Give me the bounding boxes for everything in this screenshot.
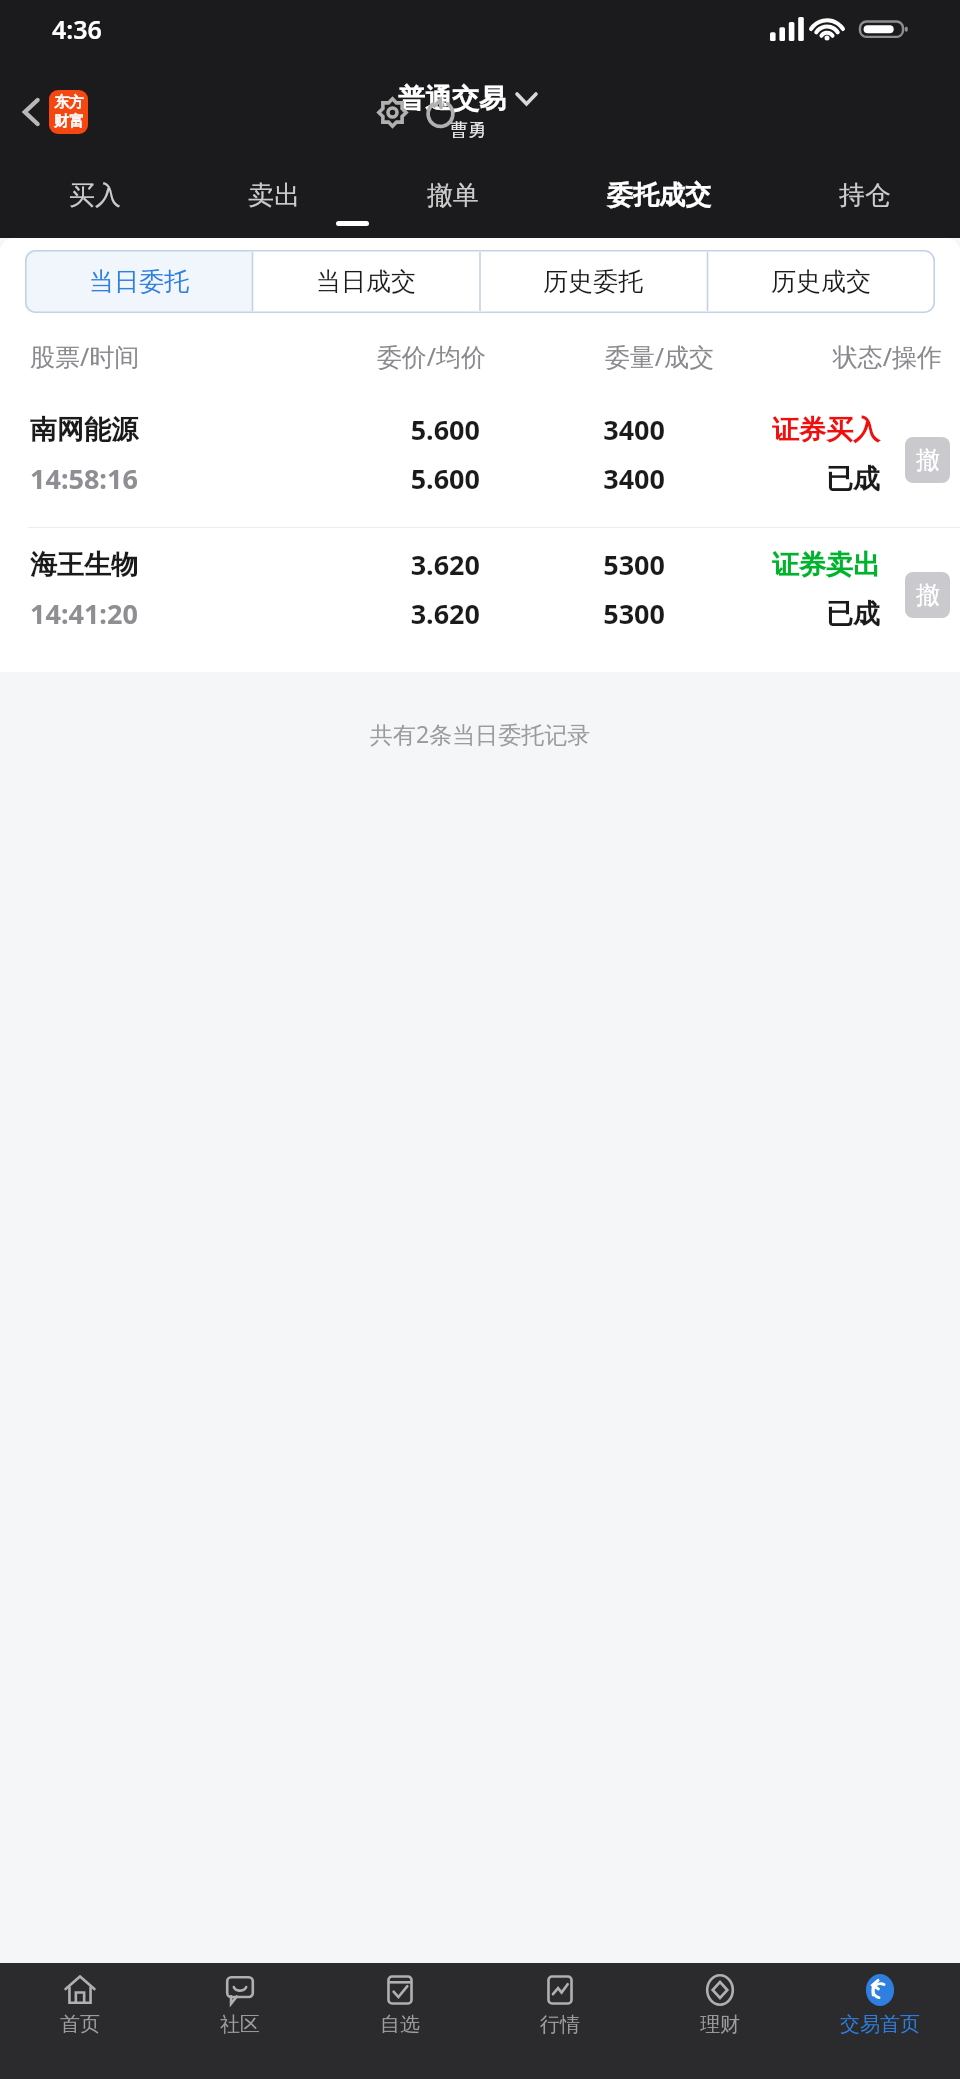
staticText: 东方 <box>54 93 84 112</box>
button[interactable]: 行情 <box>480 1963 640 2079</box>
staticText: 社区 <box>220 2012 260 2037</box>
staticText: 自选 <box>380 2012 420 2037</box>
button[interactable]: 东方 <box>49 90 88 134</box>
staticText: 证券卖出 <box>665 548 880 582</box>
button[interactable]: 交易首页 <box>800 1963 960 2079</box>
button[interactable]: 委托成交 <box>542 162 775 228</box>
staticText: 证券买入 <box>665 413 880 447</box>
staticText: 财富 <box>54 112 84 131</box>
staticText: 撤 <box>916 445 940 475</box>
staticText: 海王生物 <box>30 548 261 582</box>
button[interactable]: 当日委托 <box>25 250 252 313</box>
staticText: 历史成交 <box>771 266 871 297</box>
staticText: 当日委托 <box>89 266 189 297</box>
staticText: 理财 <box>700 2012 740 2037</box>
staticText: 共有2条当日委托记录 <box>370 718 591 749</box>
staticText: 持仓 <box>839 179 891 212</box>
staticText: 5300 <box>480 595 665 632</box>
staticText: 买入 <box>69 179 121 212</box>
staticText: 历史委托 <box>543 266 643 297</box>
staticText: 4:36 <box>52 12 102 46</box>
staticText: 5300 <box>480 546 665 583</box>
button[interactable]: 撤 <box>905 437 950 483</box>
button[interactable]: 当日成交 <box>252 250 479 313</box>
button[interactable]: 理财 <box>640 1963 800 2079</box>
staticText: 曹勇 <box>450 119 486 142</box>
button[interactable]: 撤单 <box>363 162 542 228</box>
staticText: 委托成交 <box>607 179 711 212</box>
staticText: 普通交易 <box>398 82 506 116</box>
button[interactable]: 海王生物 <box>0 528 960 662</box>
staticText: 委价/均价 <box>265 339 486 373</box>
button[interactable]: 持仓 <box>775 162 954 228</box>
button[interactable]: 卖出 <box>184 162 363 228</box>
staticText: 行情 <box>540 2012 580 2037</box>
staticText: 撤 <box>916 580 940 610</box>
staticText: 3400 <box>480 460 665 497</box>
staticText: 3.620 <box>261 595 480 632</box>
button[interactable]: 买入 <box>6 162 184 228</box>
staticText: 撤单 <box>427 179 479 212</box>
staticText: 已成 <box>665 597 880 631</box>
staticText: 已成 <box>665 462 880 496</box>
staticText: 14:41:20 <box>30 595 261 632</box>
button[interactable]: 社区 <box>160 1963 320 2079</box>
staticText: 卖出 <box>248 179 300 212</box>
staticText: 3400 <box>480 411 665 448</box>
button[interactable]: 南网能源 <box>0 393 960 527</box>
button[interactable]: Refresh <box>416 88 464 136</box>
staticText: 14:58:16 <box>30 460 261 497</box>
staticText: 5.600 <box>261 460 480 497</box>
button[interactable]: 自选 <box>320 1963 480 2079</box>
button[interactable]: 普通交易 <box>398 82 538 142</box>
staticText: 委量/成交 <box>486 339 714 373</box>
staticText: 当日成交 <box>316 266 416 297</box>
staticText: 3.620 <box>261 546 480 583</box>
button[interactable]: 历史委托 <box>479 250 707 313</box>
staticText: 南网能源 <box>30 413 261 447</box>
staticText: 交易首页 <box>840 2012 920 2037</box>
staticText: 股票/时间 <box>30 339 265 373</box>
staticText: 状态/操作 <box>714 339 942 373</box>
button[interactable]: Back <box>8 89 54 135</box>
button[interactable]: Settings <box>368 88 416 136</box>
staticText: 首页 <box>60 2012 100 2037</box>
button[interactable]: 撤 <box>905 572 950 618</box>
button[interactable]: 历史成交 <box>707 250 935 313</box>
staticText: 5.600 <box>261 411 480 448</box>
button[interactable]: 首页 <box>0 1963 160 2079</box>
